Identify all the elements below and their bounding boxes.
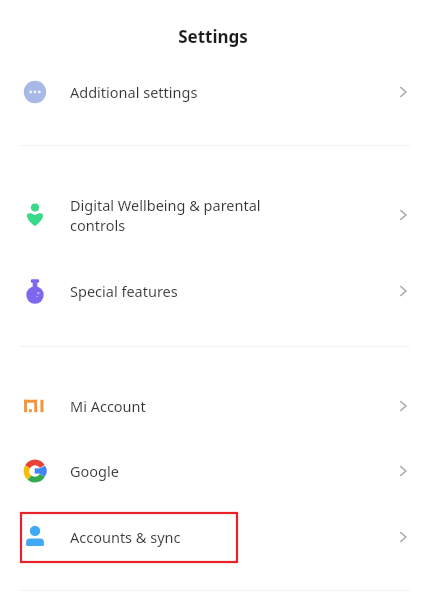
staticText: Mi Account bbox=[70, 396, 146, 416]
staticText: Google bbox=[70, 461, 119, 481]
button[interactable]: Digital Wellbeing bbox=[0, 188, 426, 242]
button[interactable]: Special features bbox=[0, 267, 426, 315]
other: Special features bbox=[22, 278, 48, 304]
staticText: Special features bbox=[70, 281, 178, 301]
button[interactable]: Google bbox=[0, 447, 426, 495]
other: Google bbox=[22, 458, 48, 484]
other: Mi Account bbox=[22, 393, 48, 419]
staticText: Settings bbox=[0, 25, 426, 48]
staticText: Accounts & sync bbox=[70, 527, 181, 547]
other: Digital Wellbeing bbox=[22, 202, 48, 228]
staticText: Digital Wellbeing & parental controls bbox=[70, 195, 261, 235]
button[interactable]: Additional settings bbox=[0, 68, 426, 116]
button[interactable]: Accounts and sync bbox=[0, 513, 426, 561]
other: Additional settings bbox=[22, 79, 48, 105]
button[interactable]: Mi Account bbox=[0, 382, 426, 430]
other: Accounts and sync bbox=[22, 524, 48, 550]
staticText: Additional settings bbox=[70, 82, 198, 102]
